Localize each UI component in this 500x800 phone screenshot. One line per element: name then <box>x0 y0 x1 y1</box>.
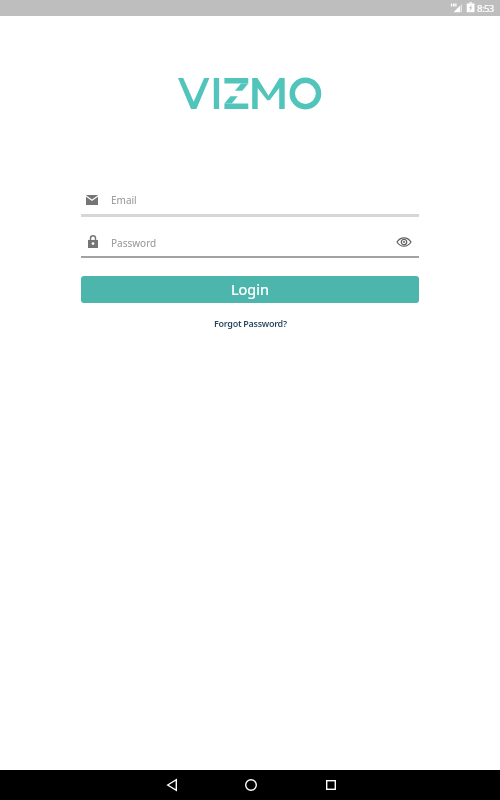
button[interactable]: Email <box>81 190 419 217</box>
button[interactable]: Forgot Password? <box>206 313 295 333</box>
button[interactable]: Back <box>149 770 194 800</box>
staticText: Email <box>111 193 137 207</box>
staticText: Password <box>111 236 157 250</box>
staticText: Login <box>231 279 269 299</box>
staticText: Forgot Password? <box>214 317 287 329</box>
staticText: 8:53 <box>477 2 494 15</box>
button[interactable]: Show password <box>393 232 415 252</box>
button[interactable]: Home <box>228 770 273 800</box>
button[interactable]: Password <box>81 232 419 258</box>
button[interactable]: Login <box>81 276 419 303</box>
button[interactable]: Recents <box>308 770 353 800</box>
